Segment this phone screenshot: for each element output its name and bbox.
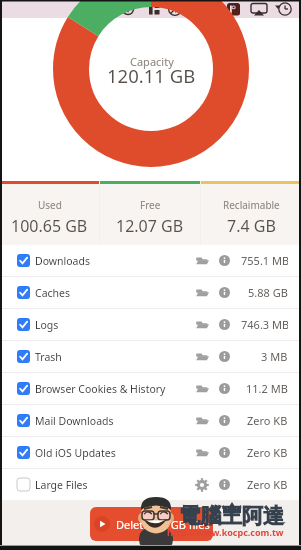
staticText: Large Files — [35, 478, 88, 492]
staticText: 3 MB — [261, 349, 288, 364]
staticText: http://www.kocpc.com.tw — [167, 526, 284, 538]
button[interactable]: Free — [100, 181, 200, 245]
button[interactable]: Info — [219, 351, 230, 362]
staticText: Used — [38, 198, 62, 212]
staticText: 120.11 GB — [107, 63, 196, 88]
button[interactable]: Toggle — [0, 437, 301, 468]
button[interactable]: Toggle — [17, 414, 30, 427]
staticText: Reclaimable — [223, 198, 280, 212]
button[interactable]: Show in Finder — [196, 318, 209, 331]
staticText: 755.1 MB — [241, 253, 288, 268]
button[interactable]: Delete 7.4 GB files — [90, 507, 213, 541]
button[interactable]: Show in Finder — [196, 254, 209, 267]
button[interactable]: Toggle — [17, 382, 30, 395]
button[interactable]: Toggle — [17, 318, 30, 331]
button[interactable]: Show in Finder — [196, 414, 209, 427]
button[interactable]: Toggle — [0, 309, 301, 340]
staticText: Downloads — [35, 254, 90, 268]
button[interactable]: Info — [219, 287, 230, 298]
staticText: 5.88 GB — [248, 285, 288, 300]
staticText: 100.65 GB — [11, 215, 88, 237]
button[interactable]: Toggle — [0, 469, 301, 500]
button[interactable]: Toggle — [17, 286, 30, 299]
staticText: Zero KB — [247, 477, 288, 492]
staticText: 746.3 MB — [241, 317, 288, 332]
button[interactable]: Info — [219, 479, 230, 490]
staticText: Free — [140, 198, 161, 212]
button[interactable]: Toggle — [17, 254, 30, 267]
button[interactable]: Toggle — [0, 373, 301, 404]
button[interactable]: Info — [219, 383, 230, 394]
staticText: 11.2 MB — [246, 381, 288, 396]
button[interactable]: Toggle — [0, 405, 301, 436]
staticText: Zero KB — [247, 413, 288, 428]
button[interactable]: Used — [0, 181, 99, 245]
button[interactable]: Show in Finder — [196, 350, 209, 363]
staticText: Browser Cookies & History — [35, 382, 166, 396]
button[interactable]: Info — [219, 447, 230, 458]
staticText: Trash — [35, 350, 62, 364]
button[interactable]: Info — [219, 415, 230, 426]
staticText: Capacity — [130, 54, 174, 69]
button[interactable]: Show in Finder — [196, 446, 209, 459]
button[interactable]: Info — [219, 255, 230, 266]
button[interactable]: Show in Finder — [196, 286, 209, 299]
button[interactable]: Settings — [195, 478, 209, 492]
staticText: 12.07 GB — [116, 215, 184, 237]
staticText: Caches — [35, 286, 71, 300]
button[interactable]: Toggle — [17, 350, 30, 363]
staticText: Logs — [35, 318, 59, 332]
staticText: Delete 7.4 GB files — [116, 517, 210, 532]
staticText: 電腦王阿達 — [179, 503, 284, 529]
button[interactable]: Toggle — [0, 341, 301, 372]
button[interactable]: Toggle — [17, 478, 30, 491]
staticText: Old iOS Updates — [35, 446, 116, 460]
button[interactable]: Reclaimable — [201, 181, 301, 245]
button[interactable]: Toggle — [17, 446, 30, 459]
button[interactable]: Info — [219, 319, 230, 330]
button[interactable]: Toggle — [0, 245, 301, 276]
staticText: Zero KB — [247, 445, 288, 460]
staticText: 7.4 GB — [227, 215, 276, 237]
staticText: Mail Downloads — [35, 414, 114, 428]
button[interactable]: Toggle — [0, 277, 301, 308]
button[interactable]: Show in Finder — [196, 382, 209, 395]
